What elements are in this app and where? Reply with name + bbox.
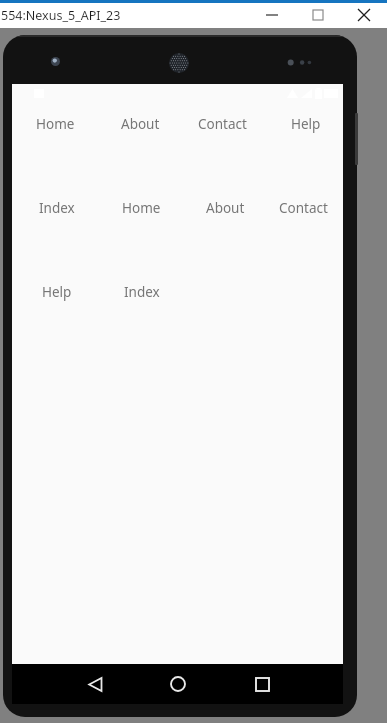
button[interactable]: Contact (277, 198, 330, 218)
staticText: 554:Nexus_5_API_23 (1, 7, 121, 24)
staticText: Contact (279, 199, 328, 217)
button[interactable]: Back (71, 664, 119, 704)
button[interactable]: Index (122, 282, 162, 302)
button[interactable]: Recent apps (238, 664, 286, 704)
button[interactable]: Help (40, 282, 74, 302)
button[interactable]: Index (37, 198, 77, 218)
button[interactable]: Minimize (249, 2, 295, 28)
button[interactable]: Home (34, 114, 77, 134)
staticText: About (206, 199, 245, 217)
button[interactable]: Maximize (295, 2, 341, 28)
staticText: About (121, 115, 160, 133)
button[interactable]: Contact (196, 114, 249, 134)
button[interactable]: Home (154, 664, 202, 704)
button[interactable]: About (119, 114, 162, 134)
staticText: Contact (198, 115, 247, 133)
staticText: Index (124, 283, 160, 301)
button[interactable]: About (204, 198, 247, 218)
button[interactable]: Home (120, 198, 163, 218)
button[interactable]: Close (341, 2, 387, 28)
staticText: Help (291, 115, 321, 133)
staticText: Index (39, 199, 75, 217)
staticText: Home (36, 115, 75, 133)
staticText: Home (122, 199, 161, 217)
button[interactable]: Help (289, 114, 323, 134)
staticText: Help (42, 283, 72, 301)
